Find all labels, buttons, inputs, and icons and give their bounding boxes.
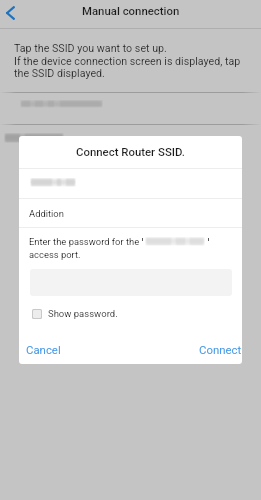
button[interactable]: Show password. <box>32 308 118 319</box>
button[interactable]: Addition <box>19 199 242 227</box>
button[interactable] <box>0 93 261 124</box>
staticText: access port. <box>29 249 81 260</box>
staticText: Manual connection <box>82 4 180 17</box>
staticText: Tap the SSID you want to set up. If the … <box>14 42 241 79</box>
staticText: Enter the password for the <box>29 236 140 247</box>
button[interactable]: Back <box>0 0 26 26</box>
button[interactable] <box>19 169 242 198</box>
button[interactable] <box>0 125 261 156</box>
staticText: Show password. <box>48 308 118 319</box>
staticText: Addition <box>29 208 64 219</box>
staticText: Cancel <box>26 343 61 356</box>
staticText: Connect Router SSID. <box>76 145 185 158</box>
button[interactable]: Connect <box>195 338 242 361</box>
button[interactable]: Cancel <box>22 338 65 361</box>
staticText: Connect <box>199 343 242 356</box>
